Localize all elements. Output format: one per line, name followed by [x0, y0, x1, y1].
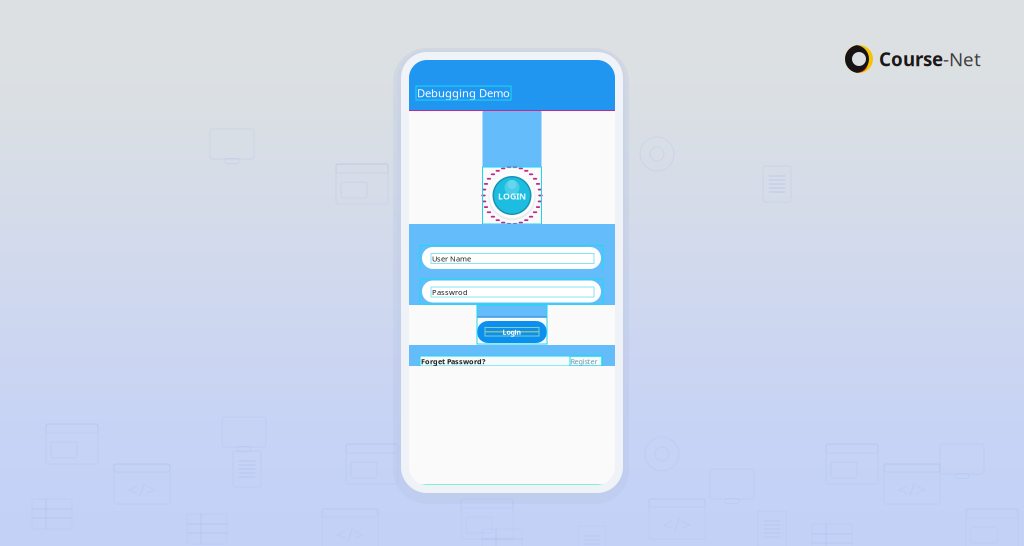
staticText: Login: [502, 327, 521, 337]
button[interactable]: Forget Password?: [420, 356, 602, 366]
button[interactable]: Passwrod: [420, 279, 603, 304]
staticText: Passwrod: [432, 287, 468, 297]
staticText: Debugging Demo: [417, 85, 510, 101]
button[interactable]: Debugging Demo: [416, 86, 511, 100]
staticText: Register: [570, 356, 597, 366]
staticText: -Net: [943, 47, 981, 71]
staticText: User Name: [432, 253, 471, 264]
button[interactable]: Login: [477, 305, 547, 344]
staticText: Course: [879, 47, 943, 71]
button[interactable]: Register: [570, 356, 602, 366]
button[interactable]: User Name: [420, 245, 603, 270]
staticText: LOGIN: [498, 190, 526, 202]
staticText: Forget Password?: [421, 356, 485, 366]
